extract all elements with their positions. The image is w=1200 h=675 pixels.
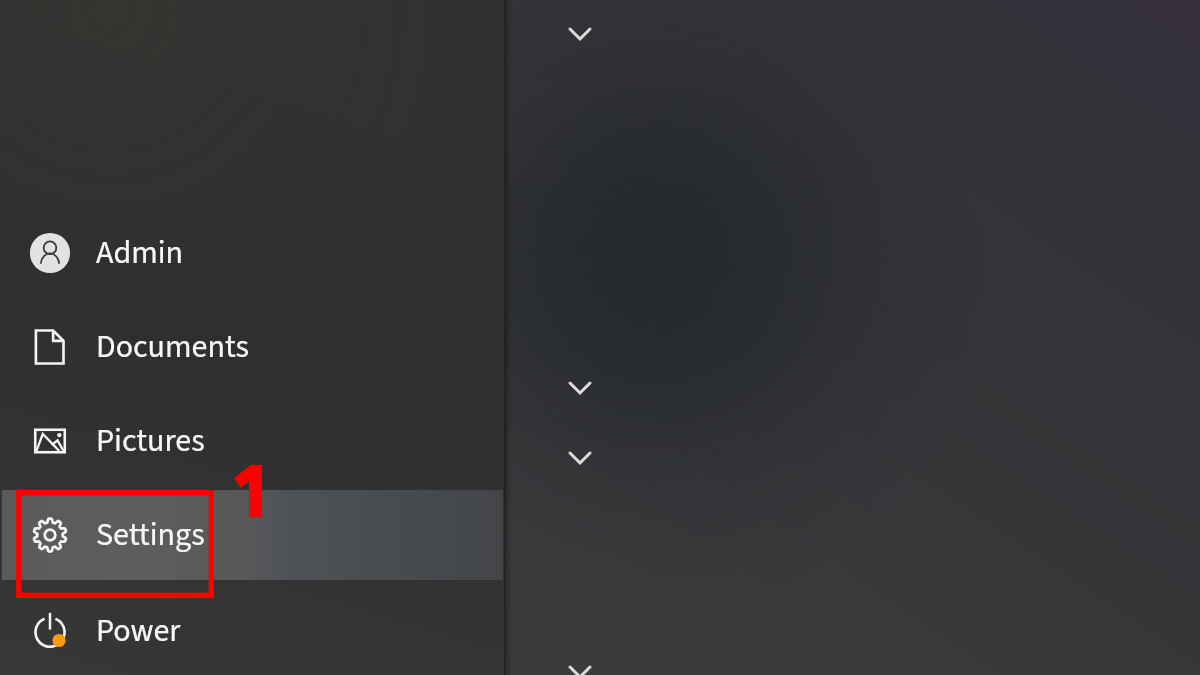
- button[interactable]: Settings: [0, 491, 503, 579]
- staticText: Power: [96, 608, 181, 654]
- button[interactable]: Expand group 1: [563, 17, 597, 51]
- button[interactable]: Documents: [0, 303, 503, 391]
- staticText: Admin: [96, 230, 184, 276]
- button[interactable]: Expand group 2: [563, 371, 597, 405]
- button[interactable]: Power: [0, 587, 503, 675]
- staticText: Documents: [96, 324, 249, 370]
- button[interactable]: Expand group 4: [563, 655, 597, 675]
- button[interactable]: Expand group 3: [563, 441, 597, 475]
- staticText: Settings: [96, 512, 205, 558]
- button[interactable]: Pictures: [0, 397, 503, 485]
- staticText: Pictures: [96, 418, 205, 464]
- button[interactable]: Admin: [0, 209, 503, 297]
